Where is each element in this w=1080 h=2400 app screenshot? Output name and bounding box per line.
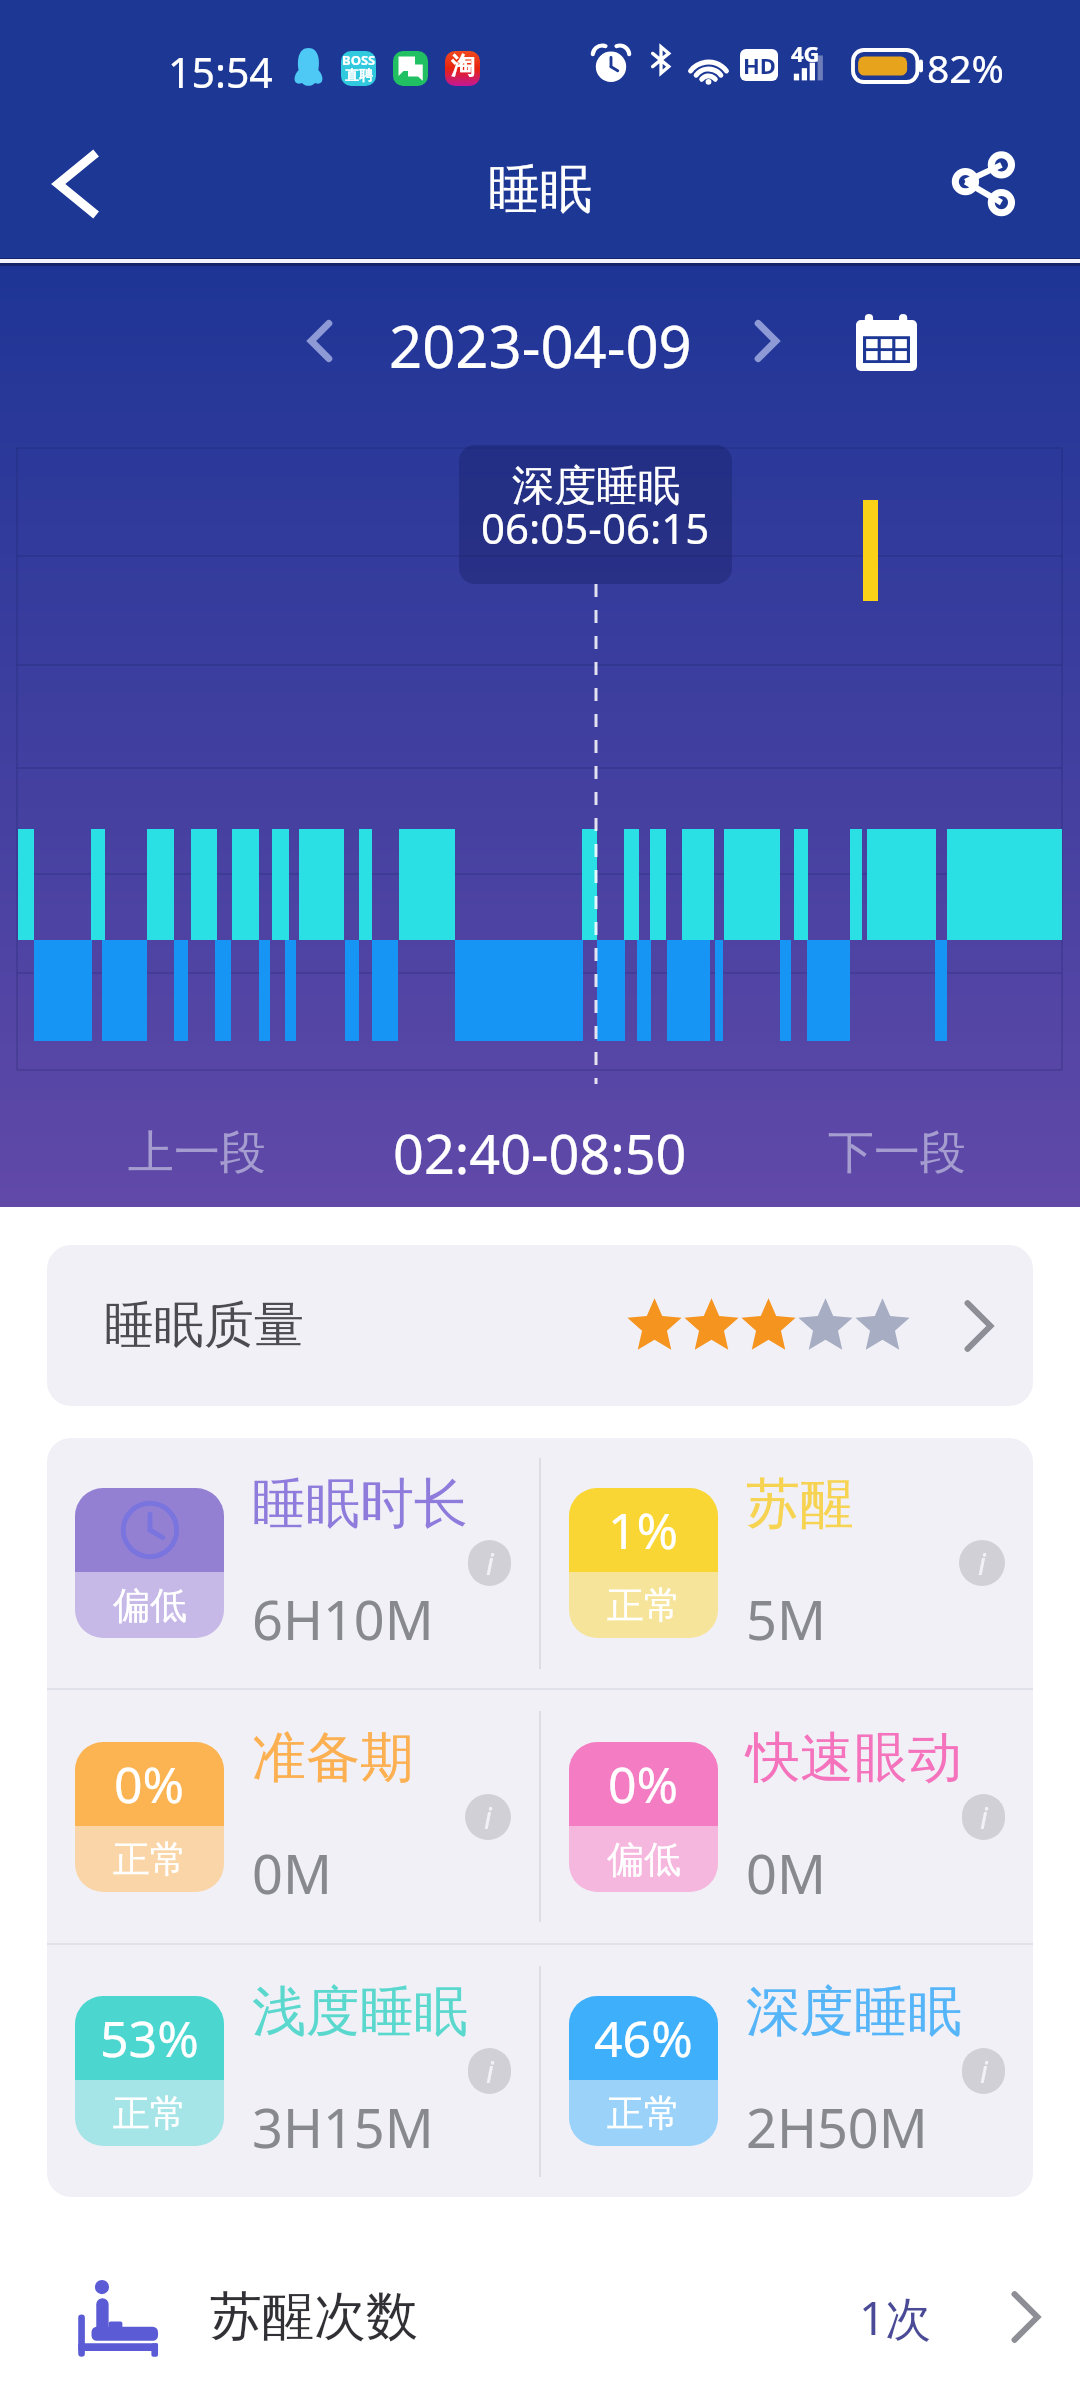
staticText: 06:05-06:15 bbox=[481, 499, 710, 556]
button[interactable]: 0% bbox=[47, 1690, 539, 1943]
staticText: 深度睡眠 bbox=[512, 460, 680, 513]
staticText: HD bbox=[743, 50, 776, 80]
staticText: 正常 bbox=[607, 2090, 681, 2137]
staticText: i bbox=[486, 2051, 494, 2092]
staticText: i bbox=[980, 2051, 988, 2092]
button[interactable]: 睡眠质量 bbox=[47, 1245, 1033, 1406]
staticText: 1次 bbox=[859, 2286, 932, 2349]
staticText: 1% bbox=[608, 1496, 679, 1564]
staticText: 苏醒 bbox=[746, 1470, 854, 1538]
button[interactable]: 下一段 bbox=[766, 1096, 1028, 1210]
staticText: 02:40-08:50 bbox=[393, 1116, 687, 1190]
staticText: 淘 bbox=[451, 51, 475, 81]
staticText: 睡眠 bbox=[488, 157, 592, 223]
button[interactable]: Next day bbox=[732, 306, 802, 376]
staticText: 偏低 bbox=[113, 1582, 187, 1629]
button[interactable]: 0% bbox=[541, 1690, 1033, 1943]
button[interactable]: 53% bbox=[47, 1945, 539, 2197]
staticText: i bbox=[980, 1797, 988, 1838]
staticText: 苏醒次数 bbox=[210, 2284, 418, 2350]
staticText: 4G bbox=[791, 38, 820, 68]
staticText: 46% bbox=[594, 2004, 693, 2072]
staticText: 0M bbox=[746, 1836, 826, 1910]
staticText: 0% bbox=[608, 1750, 679, 1818]
staticText: 睡眠时长 bbox=[252, 1470, 468, 1538]
staticText: BOSS bbox=[342, 51, 376, 69]
staticText: 下一段 bbox=[828, 1124, 966, 1182]
button[interactable]: Back bbox=[20, 129, 130, 239]
button[interactable]: Previous day bbox=[285, 306, 355, 376]
button[interactable]: 1% bbox=[541, 1438, 1033, 1688]
staticText: 0M bbox=[252, 1836, 332, 1910]
button[interactable]: 46% bbox=[541, 1945, 1033, 2197]
staticText: 浅度睡眠 bbox=[252, 1978, 468, 2046]
button[interactable]: 偏低 bbox=[47, 1438, 539, 1688]
staticText: 睡眠质量 bbox=[104, 1294, 304, 1357]
staticText: 正常 bbox=[113, 2090, 187, 2137]
staticText: 正常 bbox=[113, 1836, 187, 1883]
staticText: 6H10M bbox=[252, 1582, 434, 1656]
staticText: 准备期 bbox=[252, 1724, 414, 1792]
staticText: 上一段 bbox=[128, 1124, 266, 1182]
staticText: 正常 bbox=[607, 1582, 681, 1629]
staticText: 偏低 bbox=[607, 1836, 681, 1883]
button[interactable]: 苏醒次数 bbox=[0, 2242, 1080, 2392]
staticText: 快速眼动 bbox=[746, 1724, 962, 1792]
button[interactable]: Share bbox=[929, 129, 1039, 239]
staticText: 直聘 bbox=[345, 67, 373, 84]
staticText: 53% bbox=[100, 2004, 199, 2072]
staticText: 5M bbox=[746, 1582, 826, 1656]
staticText: i bbox=[484, 1797, 492, 1838]
staticText: 2H50M bbox=[746, 2090, 928, 2164]
staticText: 15:54 bbox=[168, 44, 273, 100]
staticText: 深度睡眠 bbox=[746, 1978, 962, 2046]
staticText: 0% bbox=[114, 1750, 185, 1818]
staticText: 2023-04-09 bbox=[389, 306, 692, 376]
staticText: 3H15M bbox=[252, 2090, 434, 2164]
staticText: 82% bbox=[927, 41, 1005, 94]
staticText: i bbox=[486, 1543, 494, 1584]
button[interactable]: 上一段 bbox=[66, 1096, 328, 1210]
staticText: i bbox=[978, 1543, 986, 1584]
button[interactable]: Calendar bbox=[845, 301, 927, 383]
